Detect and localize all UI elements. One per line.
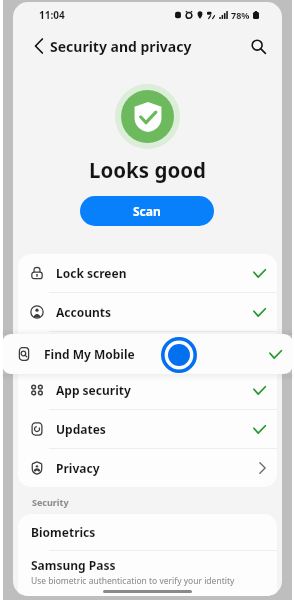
staticText: 78% xyxy=(231,9,250,21)
button[interactable]: Navigate up xyxy=(26,28,52,64)
staticText: Security xyxy=(32,496,69,508)
staticText: Looks good xyxy=(13,156,282,184)
staticText: Security and privacy xyxy=(50,37,192,56)
staticText: Scan xyxy=(133,203,161,219)
button[interactable]: Find My Mobile xyxy=(18,332,277,370)
staticText: App security xyxy=(56,382,131,398)
button[interactable]: Search xyxy=(243,31,273,61)
staticText: 11:04 xyxy=(39,8,65,22)
button[interactable]: Scan xyxy=(80,196,214,226)
button[interactable]: Find My Mobile xyxy=(2,334,293,374)
staticText: Updates xyxy=(56,421,106,437)
staticText: Find My Mobile xyxy=(56,343,147,359)
button[interactable]: App security xyxy=(18,371,277,409)
button[interactable]: Lock screen xyxy=(18,254,277,292)
staticText: Biometrics xyxy=(31,524,96,540)
staticText: Lock screen xyxy=(56,265,127,281)
staticText: Privacy xyxy=(56,460,100,476)
staticText: Accounts xyxy=(56,304,112,320)
button[interactable]: Samsung Pass xyxy=(18,551,277,587)
staticText: Find My Mobile xyxy=(44,346,135,362)
button[interactable]: Privacy xyxy=(18,449,277,487)
button[interactable]: Updates xyxy=(18,410,277,448)
button[interactable]: Accounts xyxy=(18,293,277,331)
staticText: Samsung Pass xyxy=(31,557,116,573)
staticText: Use biometric authentication to verify y… xyxy=(31,575,235,587)
button[interactable]: Biometrics xyxy=(18,514,277,550)
